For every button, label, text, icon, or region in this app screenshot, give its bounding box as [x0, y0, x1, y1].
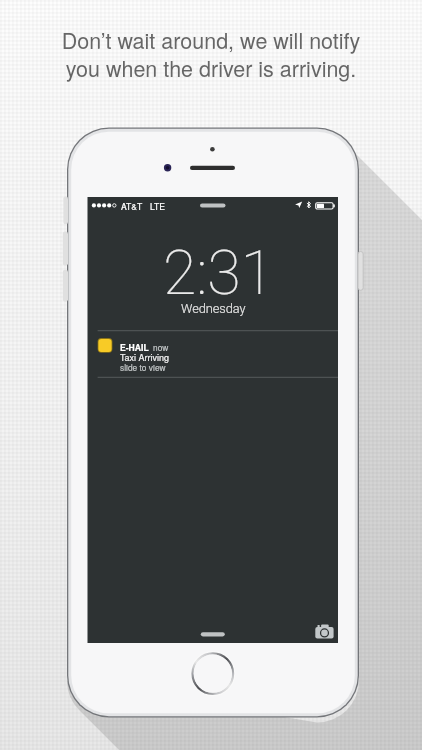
staticText: E-HAIL [120, 341, 149, 353]
staticText: Wednesday [181, 301, 246, 316]
button[interactable]: Camera [312, 620, 338, 646]
staticText: LTE [150, 200, 165, 212]
staticText: slide to view [120, 361, 166, 373]
staticText: Taxi Arriving [120, 351, 170, 364]
staticText: now [153, 341, 169, 353]
button[interactable]: E-HAIL [88, 331, 338, 377]
staticText: 2:31 [163, 237, 275, 308]
staticText: AT&T [121, 200, 143, 212]
staticText: Don’t wait around, we will notify you wh… [24, 24, 398, 750]
